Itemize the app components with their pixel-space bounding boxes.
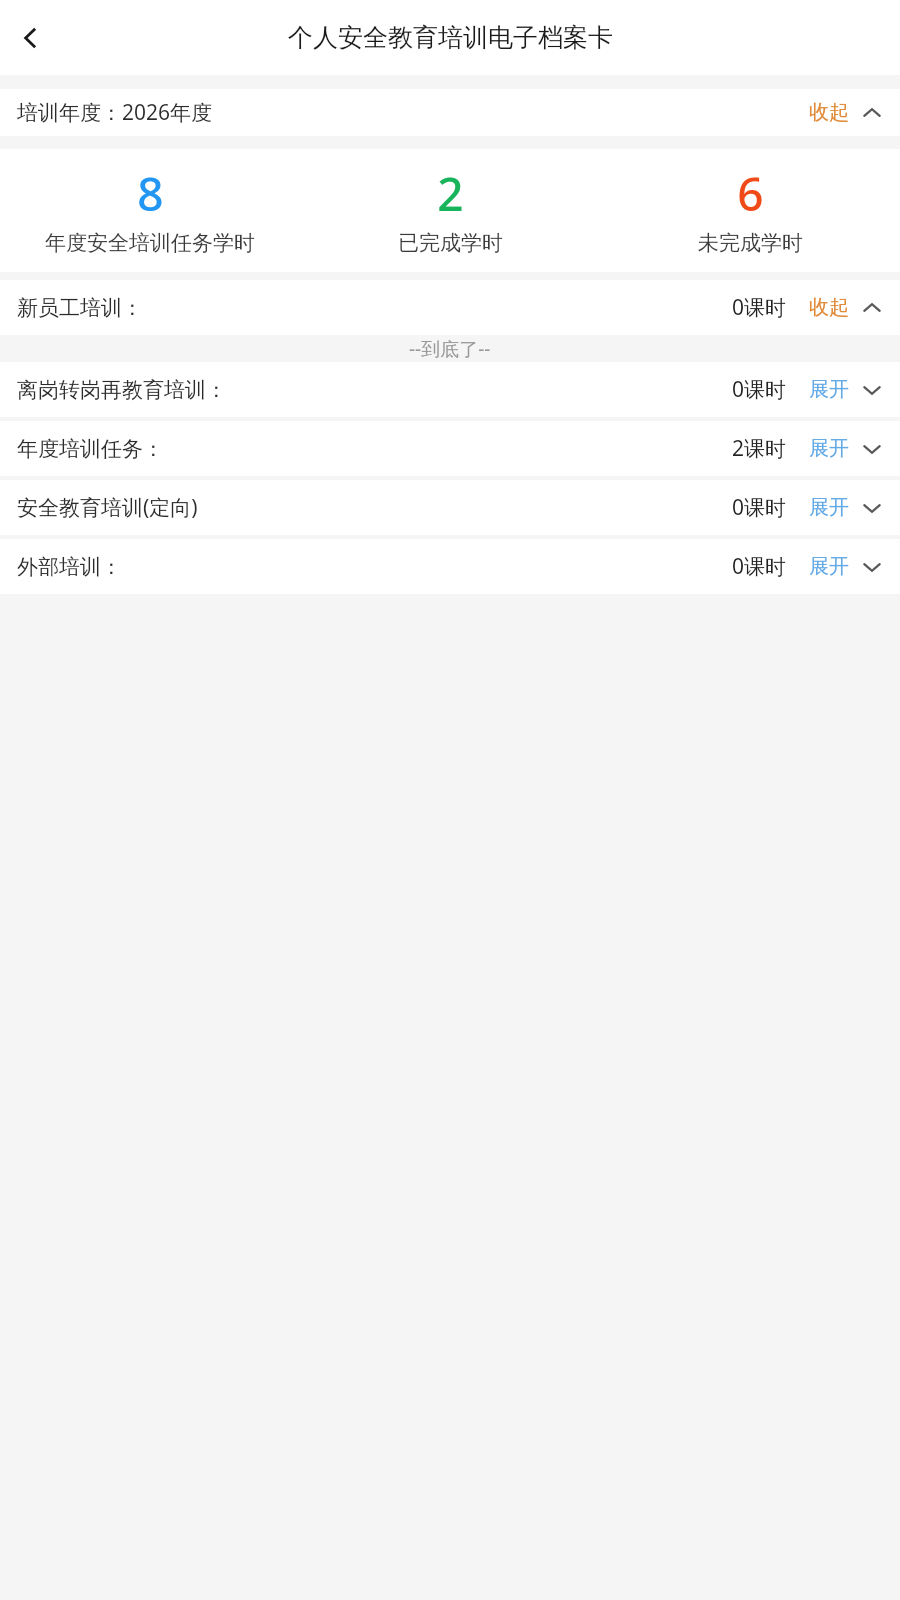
staticText: --到底了-- [409, 336, 491, 362]
staticText: 0课时 [732, 493, 787, 522]
button[interactable]: 安全教育培训(定向) [0, 480, 900, 535]
staticText: 0课时 [732, 293, 787, 322]
staticText: 未完成学时 [698, 230, 803, 256]
staticText: 收起 [809, 295, 849, 320]
staticText: 2课时 [732, 434, 787, 463]
staticText: 离岗转岗再教育培训： [17, 377, 227, 403]
staticText: 安全教育培训(定向) [17, 493, 198, 522]
button[interactable]: 离岗转岗再教育培训： [0, 362, 900, 417]
staticText: 培训年度：2026年度 [17, 98, 213, 127]
button[interactable]: 外部培训： [0, 539, 900, 594]
staticText: 年度培训任务： [17, 436, 164, 462]
staticText: 0课时 [732, 552, 787, 581]
staticText: 个人安全教育培训电子档案卡 [288, 22, 613, 53]
staticText: 0课时 [732, 375, 787, 404]
staticText: 展开 [809, 436, 849, 461]
staticText: 新员工培训： [17, 295, 143, 321]
button[interactable]: 新员工培训： [0, 280, 900, 335]
button[interactable]: 年度培训任务： [0, 421, 900, 476]
staticText: 年度安全培训任务学时 [45, 230, 255, 256]
staticText: 外部培训： [17, 554, 122, 580]
staticText: 展开 [809, 554, 849, 579]
button[interactable]: Back [6, 14, 54, 62]
staticText: 收起 [809, 100, 849, 125]
staticText: 展开 [809, 377, 849, 402]
button[interactable]: 培训年度：2026年度 [0, 89, 900, 136]
staticText: 展开 [809, 495, 849, 520]
staticText: 已完成学时 [398, 230, 503, 256]
staticText: 2 [437, 162, 464, 225]
staticText: 8 [137, 162, 164, 225]
staticText: 6 [737, 162, 764, 225]
